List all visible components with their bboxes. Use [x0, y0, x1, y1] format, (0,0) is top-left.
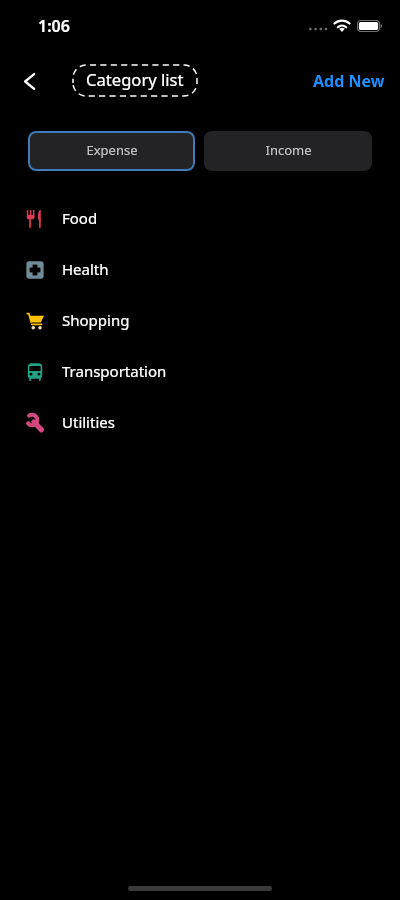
button[interactable]: Transportation — [0, 346, 400, 397]
button[interactable]: Utilities — [0, 397, 400, 448]
staticText: Health — [62, 259, 109, 279]
button[interactable]: Shopping — [0, 295, 400, 346]
button[interactable]: Food — [0, 193, 400, 244]
staticText: Category list — [86, 68, 184, 91]
button[interactable]: Health — [0, 244, 400, 295]
staticText: Food — [62, 208, 98, 228]
staticText: Shopping — [62, 310, 130, 330]
button[interactable]: Income — [204, 131, 372, 171]
staticText: Income — [265, 141, 312, 159]
staticText: 1:06 — [38, 15, 70, 37]
staticText: Add New — [313, 70, 385, 92]
button[interactable]: Add New — [301, 64, 400, 98]
button[interactable]: Category list — [73, 65, 197, 96]
staticText: Utilities — [62, 412, 115, 432]
staticText: Expense — [86, 141, 138, 159]
staticText: Transportation — [62, 361, 167, 381]
button[interactable]: Back — [7, 59, 51, 103]
button[interactable]: Expense — [28, 131, 195, 171]
